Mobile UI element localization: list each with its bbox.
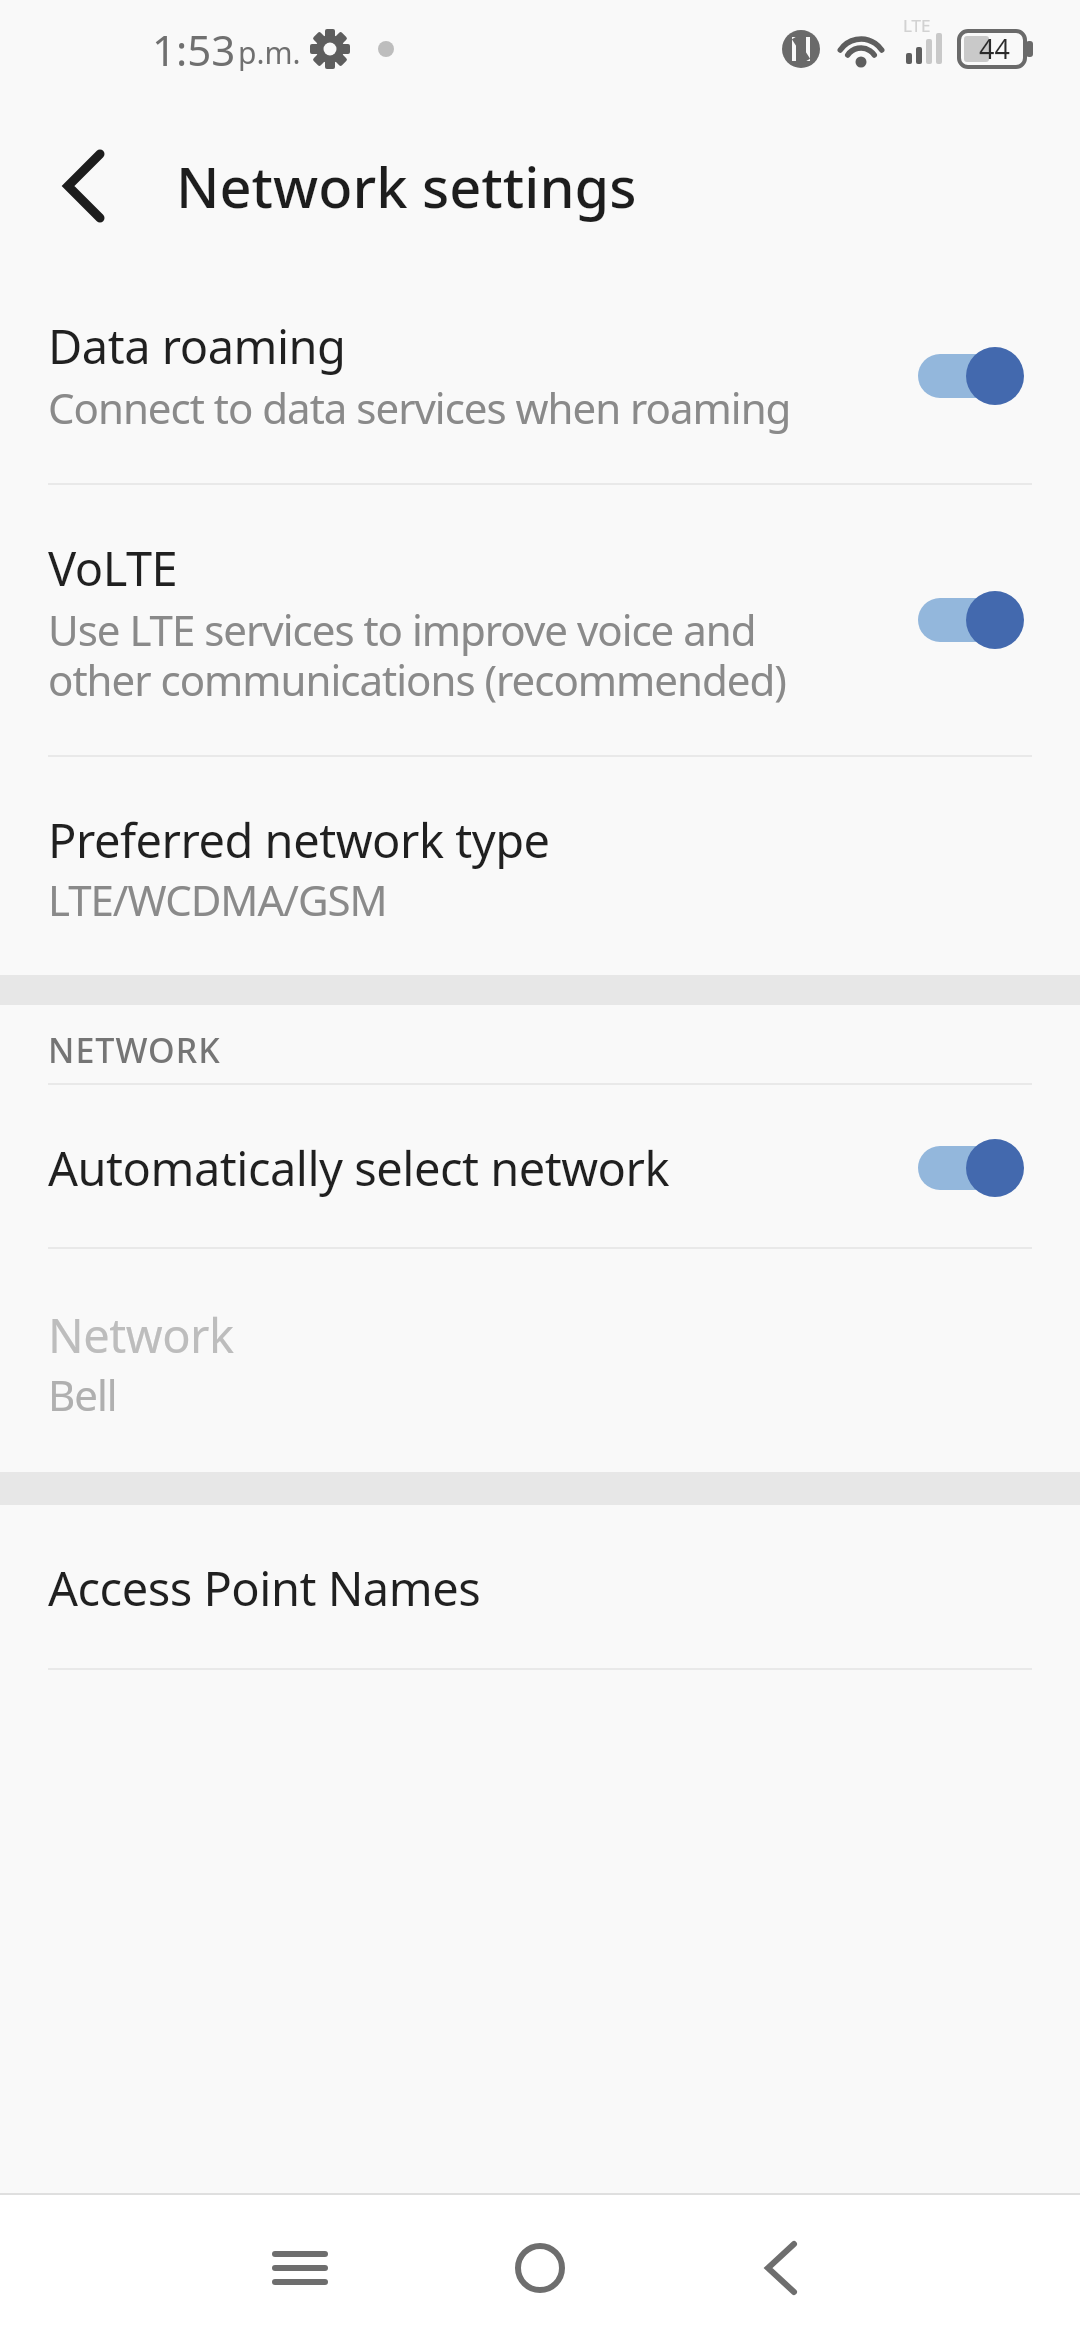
staticText: Preferred network type bbox=[48, 808, 550, 872]
button[interactable]: VoLTE bbox=[0, 485, 1080, 755]
staticText: Data roaming bbox=[48, 314, 346, 378]
staticText: LTE/WCDMA/GSM bbox=[48, 871, 387, 928]
button[interactable] bbox=[480, 2208, 600, 2328]
staticText: Network bbox=[48, 1303, 234, 1367]
button[interactable] bbox=[240, 2208, 360, 2328]
staticText: VoLTE bbox=[48, 536, 178, 600]
button[interactable] bbox=[720, 2208, 840, 2328]
staticText: 1:53 bbox=[152, 21, 236, 78]
staticText: LTE bbox=[903, 14, 931, 37]
staticText: 44 bbox=[979, 30, 1010, 67]
button[interactable]: Data roaming bbox=[0, 290, 1080, 483]
button[interactable]: Automatically select network bbox=[0, 1085, 1080, 1247]
staticText: Network settings bbox=[176, 148, 637, 224]
staticText: Bell bbox=[48, 1366, 117, 1423]
staticText: NETWORK bbox=[48, 1027, 221, 1073]
staticText: Use LTE services to improve voice and ot… bbox=[48, 601, 786, 709]
staticText: Access Point Names bbox=[48, 1556, 481, 1620]
button[interactable]: Access Point Names bbox=[0, 1507, 1080, 1668]
staticText: Automatically select network bbox=[48, 1136, 670, 1200]
button[interactable] bbox=[44, 146, 124, 226]
staticText: p.m. bbox=[238, 32, 301, 73]
button[interactable]: Preferred network type bbox=[0, 757, 1080, 975]
staticText: Connect to data services when roaming bbox=[48, 379, 791, 436]
